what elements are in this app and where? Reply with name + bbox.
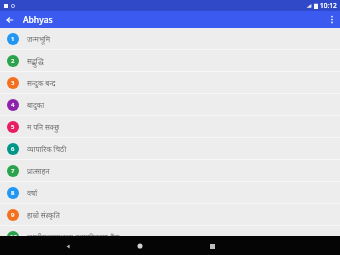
staticText: व्यापारिक चिठी	[27, 144, 67, 154]
button[interactable]: 4	[0, 94, 340, 115]
button[interactable]: More options	[324, 12, 339, 27]
button[interactable]: Recent apps	[205, 239, 219, 253]
button[interactable]: 7	[0, 160, 340, 181]
button[interactable]: 5	[0, 116, 340, 137]
staticText: जन्मभूमि	[27, 34, 51, 44]
button[interactable]: Back	[2, 12, 17, 27]
staticText: 3	[11, 79, 15, 87]
button[interactable]: 10	[0, 226, 340, 236]
staticText: हाम्रो संस्कृति	[27, 210, 60, 220]
staticText: Abhyas	[23, 14, 53, 26]
button[interactable]: Back	[61, 239, 75, 253]
staticText: म पनि सक्छु	[27, 122, 60, 132]
staticText: स्थानीयस्तरमभन्दा व्यापारिकरण बैंक	[27, 232, 120, 236]
staticText: 10	[10, 233, 17, 236]
staticText: 7	[11, 167, 15, 175]
staticText: वर्षा	[27, 188, 38, 198]
button[interactable]: 9	[0, 204, 340, 225]
button[interactable]: 8	[0, 182, 340, 203]
button[interactable]: Home	[133, 239, 147, 253]
staticText: बादुका	[27, 100, 45, 110]
staticText: 5	[11, 123, 15, 131]
staticText: 6	[11, 145, 15, 153]
staticText: सन्दुक बन्द	[27, 78, 56, 88]
staticText: 1	[11, 35, 15, 43]
button[interactable]: 3	[0, 72, 340, 93]
staticText: 8	[11, 189, 15, 197]
staticText: प्रात्साहन	[27, 166, 50, 176]
staticText: सद्बुद्धि	[27, 56, 44, 66]
button[interactable]: 1	[0, 28, 340, 49]
staticText: 10:12	[320, 1, 337, 10]
staticText: 2	[11, 57, 15, 65]
button[interactable]: 2	[0, 50, 340, 71]
staticText: 9	[11, 211, 15, 219]
button[interactable]: 6	[0, 138, 340, 159]
staticText: 4	[11, 101, 15, 109]
